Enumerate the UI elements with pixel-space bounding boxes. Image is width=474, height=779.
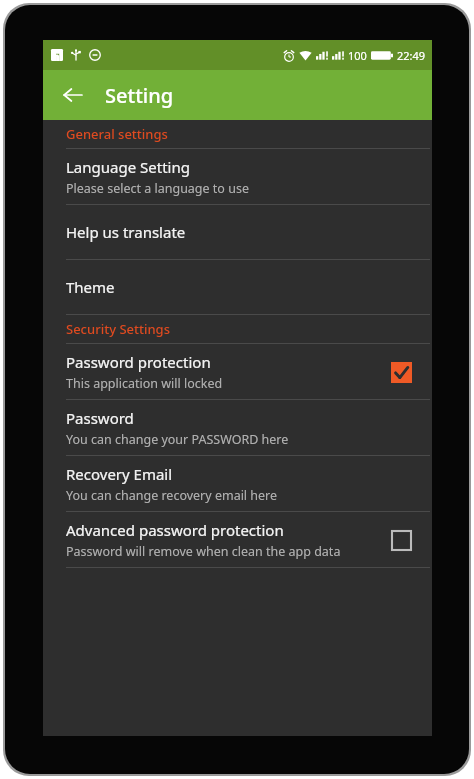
staticText: Language Setting — [66, 157, 190, 177]
staticText: Help us translate — [66, 222, 186, 242]
button[interactable]: Recovery Email — [43, 456, 432, 511]
staticText: Advanced password protection — [66, 520, 284, 540]
staticText: Password protection — [66, 352, 211, 372]
staticText: You can change your PASSWORD here — [66, 431, 289, 448]
staticText: This application will locked — [66, 375, 223, 392]
staticText: Setting — [105, 82, 174, 109]
button[interactable]: Theme — [43, 260, 432, 314]
button[interactable]: Language Setting — [43, 149, 432, 204]
staticText: Password — [66, 408, 134, 428]
staticText: You can change recovery email here — [66, 487, 278, 504]
staticText: Security Settings — [66, 320, 170, 338]
button[interactable]: Advanced password protection disabled — [386, 525, 416, 555]
button[interactable]: Password — [43, 400, 432, 455]
staticText: Please select a language to use — [66, 180, 249, 197]
staticText: Recovery Email — [66, 464, 173, 484]
staticText: Theme — [66, 277, 115, 297]
button[interactable]: Password protection — [43, 344, 432, 399]
button[interactable]: Password protection enabled — [386, 357, 416, 387]
staticText: 22:49 — [397, 48, 426, 63]
button[interactable]: Help us translate — [43, 205, 432, 259]
staticText: 100 — [348, 48, 367, 63]
button[interactable]: Advanced password protection — [43, 512, 432, 567]
staticText: General settings — [66, 125, 168, 143]
staticText: Password will remove when clean the app … — [66, 543, 341, 560]
button[interactable]: Back — [55, 77, 91, 113]
